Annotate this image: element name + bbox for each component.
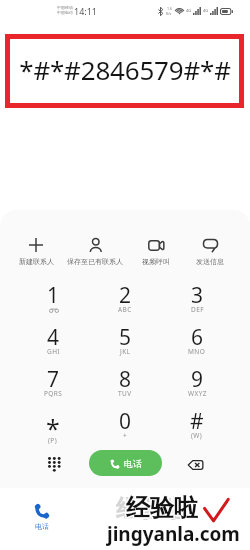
button[interactable]: 4	[19, 323, 87, 365]
staticText: jingyanla.com	[108, 522, 241, 548]
staticText: JKL	[120, 347, 131, 356]
staticText: 电话	[124, 458, 142, 469]
staticText: 4G	[186, 8, 192, 13]
staticText: jingyanla.com	[106, 522, 239, 548]
staticText: 4	[47, 323, 60, 352]
staticText: 1.6	[167, 6, 172, 11]
staticText: jingyanla.com	[107, 521, 240, 547]
staticText: ABC	[118, 305, 132, 314]
staticText: TUV	[118, 389, 132, 398]
staticText: K/s	[166, 11, 172, 16]
button[interactable]: Keypad	[36, 447, 72, 483]
button[interactable]: 2	[91, 281, 159, 323]
staticText: +	[123, 431, 128, 440]
staticText: DEF	[191, 305, 204, 314]
staticText: jingyanla.com	[106, 521, 239, 547]
button[interactable]: 视频呼叫	[133, 237, 179, 266]
staticText: (W)	[191, 431, 203, 440]
staticText: #	[190, 407, 204, 436]
staticText: 1	[47, 281, 60, 310]
button[interactable]: 7	[19, 365, 87, 407]
button[interactable]: 保存至已有联系人	[59, 237, 131, 266]
button[interactable]: 0	[91, 407, 159, 449]
staticText: 保存至已有联系人	[67, 257, 123, 266]
staticText: 中国移动	[57, 5, 73, 10]
staticText: 新建联系人	[19, 257, 54, 266]
staticText: 经验啦	[127, 494, 199, 524]
staticText: 经验啦	[126, 493, 198, 523]
button[interactable]: 电话	[89, 450, 162, 476]
staticText: 经验啦	[116, 494, 188, 524]
staticText: 0	[119, 407, 132, 436]
staticText: 发送信息	[196, 257, 224, 266]
button[interactable]: 8	[91, 365, 159, 407]
button[interactable]: #	[163, 407, 231, 449]
button[interactable]: 3	[163, 281, 231, 323]
button[interactable]: 6	[163, 323, 231, 365]
staticText: 6	[191, 323, 204, 352]
staticText: 3	[191, 281, 204, 310]
staticText: jingyanla.com	[106, 520, 239, 546]
button[interactable]: 9	[163, 365, 231, 407]
staticText: 视频呼叫	[142, 257, 170, 266]
staticText: 经验啦	[125, 493, 197, 523]
staticText: 经验啦	[126, 494, 198, 524]
staticText: 14:11	[74, 5, 98, 17]
staticText: *	[46, 411, 60, 445]
button[interactable]: 5	[91, 323, 159, 365]
staticText: 经验啦	[126, 492, 198, 522]
staticText: 5	[119, 323, 132, 352]
button[interactable]: Backspace	[177, 447, 213, 483]
button[interactable]: 1	[19, 281, 87, 323]
staticText: 9	[191, 365, 204, 394]
staticText: 7	[47, 365, 60, 394]
staticText: 2	[119, 281, 132, 310]
staticText: jingyanla.com	[107, 520, 240, 546]
staticText: jingyanla.com	[108, 520, 241, 546]
staticText: GHI	[47, 347, 60, 356]
staticText: MNO	[188, 347, 206, 356]
staticText: *#*#2846579#*#	[19, 52, 231, 87]
staticText: 经验啦	[125, 492, 197, 522]
staticText: 经验啦	[127, 492, 199, 522]
staticText: jingyanla.com	[108, 521, 241, 547]
staticText: 经验啦	[127, 493, 199, 523]
staticText: 4G	[203, 8, 209, 13]
button[interactable]: 电话	[24, 503, 60, 531]
staticText: PQRS	[44, 389, 63, 398]
staticText: 经验啦	[125, 494, 197, 524]
button[interactable]: *	[19, 407, 87, 449]
staticText: jingyanla.com	[107, 522, 240, 548]
button[interactable]: 发送信息	[187, 237, 233, 266]
staticText: 8	[119, 365, 132, 394]
staticText: 电话	[35, 522, 49, 531]
button[interactable]: 新建联系人	[8, 237, 64, 266]
staticText: 中国电信	[57, 10, 73, 15]
staticText: (P)	[48, 436, 58, 444]
staticText: WXYZ	[188, 389, 207, 398]
